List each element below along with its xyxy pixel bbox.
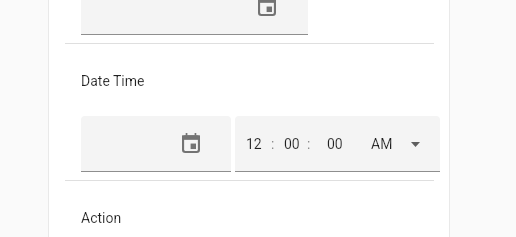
staticText: 12 <box>246 136 262 152</box>
staticText: 00 <box>284 136 300 152</box>
staticText: : <box>307 136 311 152</box>
staticText: Action <box>81 210 122 226</box>
staticText: AM <box>371 136 393 152</box>
button[interactable]: Change AM or PM <box>411 142 420 147</box>
staticText: : <box>271 136 275 152</box>
other: Pick date <box>182 133 200 153</box>
button[interactable] <box>81 0 308 34</box>
button[interactable] <box>81 116 231 171</box>
staticText: Date Time <box>81 73 145 89</box>
staticText: 00 <box>327 136 343 152</box>
button[interactable] <box>235 116 440 171</box>
other: Pick date <box>258 0 276 16</box>
